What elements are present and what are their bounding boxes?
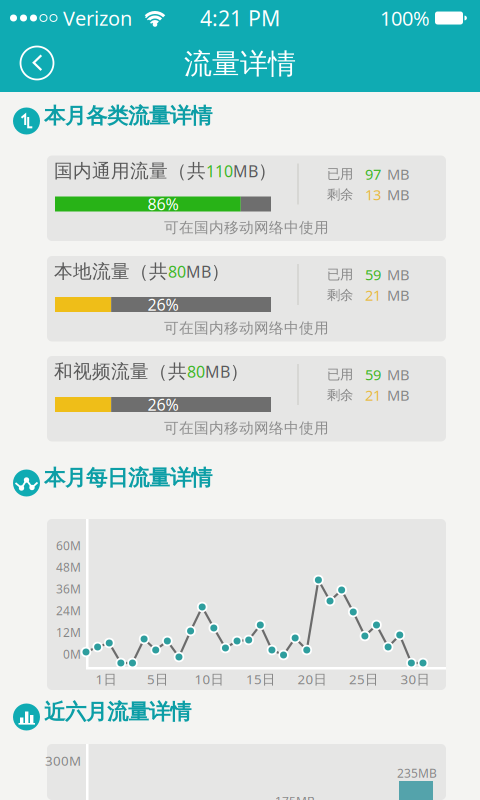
staticText: 本月各类流量详情 [44, 103, 212, 129]
staticText: 59 [365, 365, 381, 384]
staticText: 26% [147, 394, 178, 415]
staticText: 97 [365, 164, 381, 184]
staticText: 86% [147, 193, 178, 215]
staticText: 近六月流量详情 [44, 699, 191, 725]
staticText: 可在国内移动网络中使用 [164, 218, 329, 236]
staticText: 235MB [397, 765, 437, 781]
staticText: 已用 [327, 266, 353, 283]
staticText: 21 [365, 285, 381, 305]
staticText: ） [258, 159, 277, 182]
staticText: 26% [147, 294, 178, 315]
staticText: 100% [380, 5, 430, 31]
staticText: 48M [56, 559, 81, 575]
staticText: MB [387, 285, 410, 305]
staticText: 21 [365, 385, 381, 405]
staticText: MB [387, 265, 410, 284]
staticText: 剩余 [327, 287, 353, 303]
staticText: 12M [56, 624, 81, 640]
staticText: ） [211, 260, 230, 283]
staticText: 10日 [194, 670, 223, 688]
staticText: 已用 [327, 366, 353, 383]
staticText: 4:21 PM [200, 4, 280, 32]
staticText: MB [387, 385, 410, 405]
staticText: 1日 [95, 670, 116, 688]
staticText: 本地流量 [54, 260, 130, 283]
staticText: 5日 [147, 670, 168, 688]
staticText: 80 [168, 261, 186, 282]
staticText: 24M [56, 603, 81, 618]
staticText: 80 [187, 361, 205, 382]
staticText: （共 [168, 159, 206, 182]
staticText: Verizon [63, 5, 132, 31]
staticText: 剩余 [327, 186, 353, 203]
staticText: 可在国内移动网络中使用 [164, 319, 329, 337]
staticText: MB [387, 164, 410, 184]
staticText: 59 [365, 265, 381, 284]
staticText: MB [233, 160, 258, 181]
staticText: 流量详情 [184, 47, 296, 81]
button[interactable]: Back [15, 41, 59, 85]
staticText: MB [186, 261, 211, 282]
staticText: 0M [63, 646, 81, 662]
staticText: （共 [149, 360, 187, 383]
staticText: 60M [56, 537, 81, 553]
staticText: 可在国内移动网络中使用 [164, 419, 329, 437]
staticText: ） [230, 360, 249, 383]
staticText: 110 [206, 160, 233, 181]
staticText: 25日 [349, 670, 378, 688]
staticText: 30日 [400, 670, 429, 688]
staticText: 剩余 [327, 387, 353, 403]
staticText: 本月每日流量详情 [44, 465, 212, 491]
staticText: MB [387, 185, 410, 204]
staticText: MB [205, 361, 230, 382]
staticText: 15日 [246, 670, 275, 688]
staticText: 20日 [297, 670, 326, 688]
staticText: MB [387, 365, 410, 384]
staticText: 国内通用流量 [54, 159, 168, 182]
staticText: 13 [365, 185, 381, 204]
staticText: 300M [45, 752, 81, 769]
staticText: 已用 [327, 166, 353, 182]
staticText: 36M [56, 581, 81, 597]
staticText: 和视频流量 [54, 360, 149, 383]
staticText: （共 [130, 260, 168, 283]
staticText: 175MB [275, 793, 315, 800]
